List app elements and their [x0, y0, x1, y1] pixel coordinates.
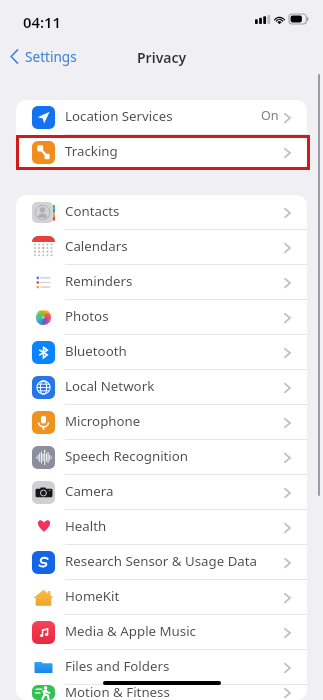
staticText: Local Network [65, 377, 284, 395]
button[interactable]: Tracking [16, 135, 307, 170]
staticText: Speech Recognition [65, 447, 284, 465]
staticText: 04:11 [23, 12, 61, 32]
button[interactable]: Bluetooth [16, 335, 307, 370]
staticText: Microphone [65, 412, 284, 430]
staticText: Bluetooth [65, 342, 284, 360]
staticText: On [261, 107, 279, 124]
button[interactable]: Files and Folders [16, 650, 307, 685]
button[interactable]: Settings [10, 47, 77, 66]
staticText: Photos [65, 307, 284, 325]
button[interactable]: Microphone [16, 405, 307, 440]
staticText: Calendars [65, 237, 284, 255]
button[interactable]: Motion & Fitness [16, 685, 307, 700]
staticText: Privacy [137, 48, 187, 67]
button[interactable]: Health [16, 510, 307, 545]
button[interactable]: Research Sensor & Usage Data [16, 545, 307, 580]
staticText: Location Services [65, 107, 261, 125]
button[interactable]: Speech Recognition [16, 440, 307, 475]
staticText: Contacts [65, 202, 284, 220]
button[interactable]: Local Network [16, 370, 307, 405]
staticText: Settings [25, 47, 77, 66]
staticText: Research Sensor & Usage Data [65, 552, 284, 570]
staticText: Camera [65, 482, 284, 500]
button[interactable]: Media & Apple Music [16, 615, 307, 650]
staticText: Reminders [65, 272, 284, 290]
staticText: Tracking [65, 142, 284, 160]
staticText: HomeKit [65, 587, 284, 605]
staticText: Health [65, 517, 284, 535]
button[interactable]: Calendars [16, 230, 307, 265]
staticText: Files and Folders [65, 657, 284, 675]
button[interactable]: HomeKit [16, 580, 307, 615]
button[interactable]: Contacts [16, 195, 307, 230]
button[interactable]: Photos [16, 300, 307, 335]
button[interactable]: Reminders [16, 265, 307, 300]
staticText: Motion & Fitness [65, 683, 284, 698]
button[interactable]: Location Services [16, 100, 307, 135]
staticText: Media & Apple Music [65, 622, 284, 640]
button[interactable]: Camera [16, 475, 307, 510]
